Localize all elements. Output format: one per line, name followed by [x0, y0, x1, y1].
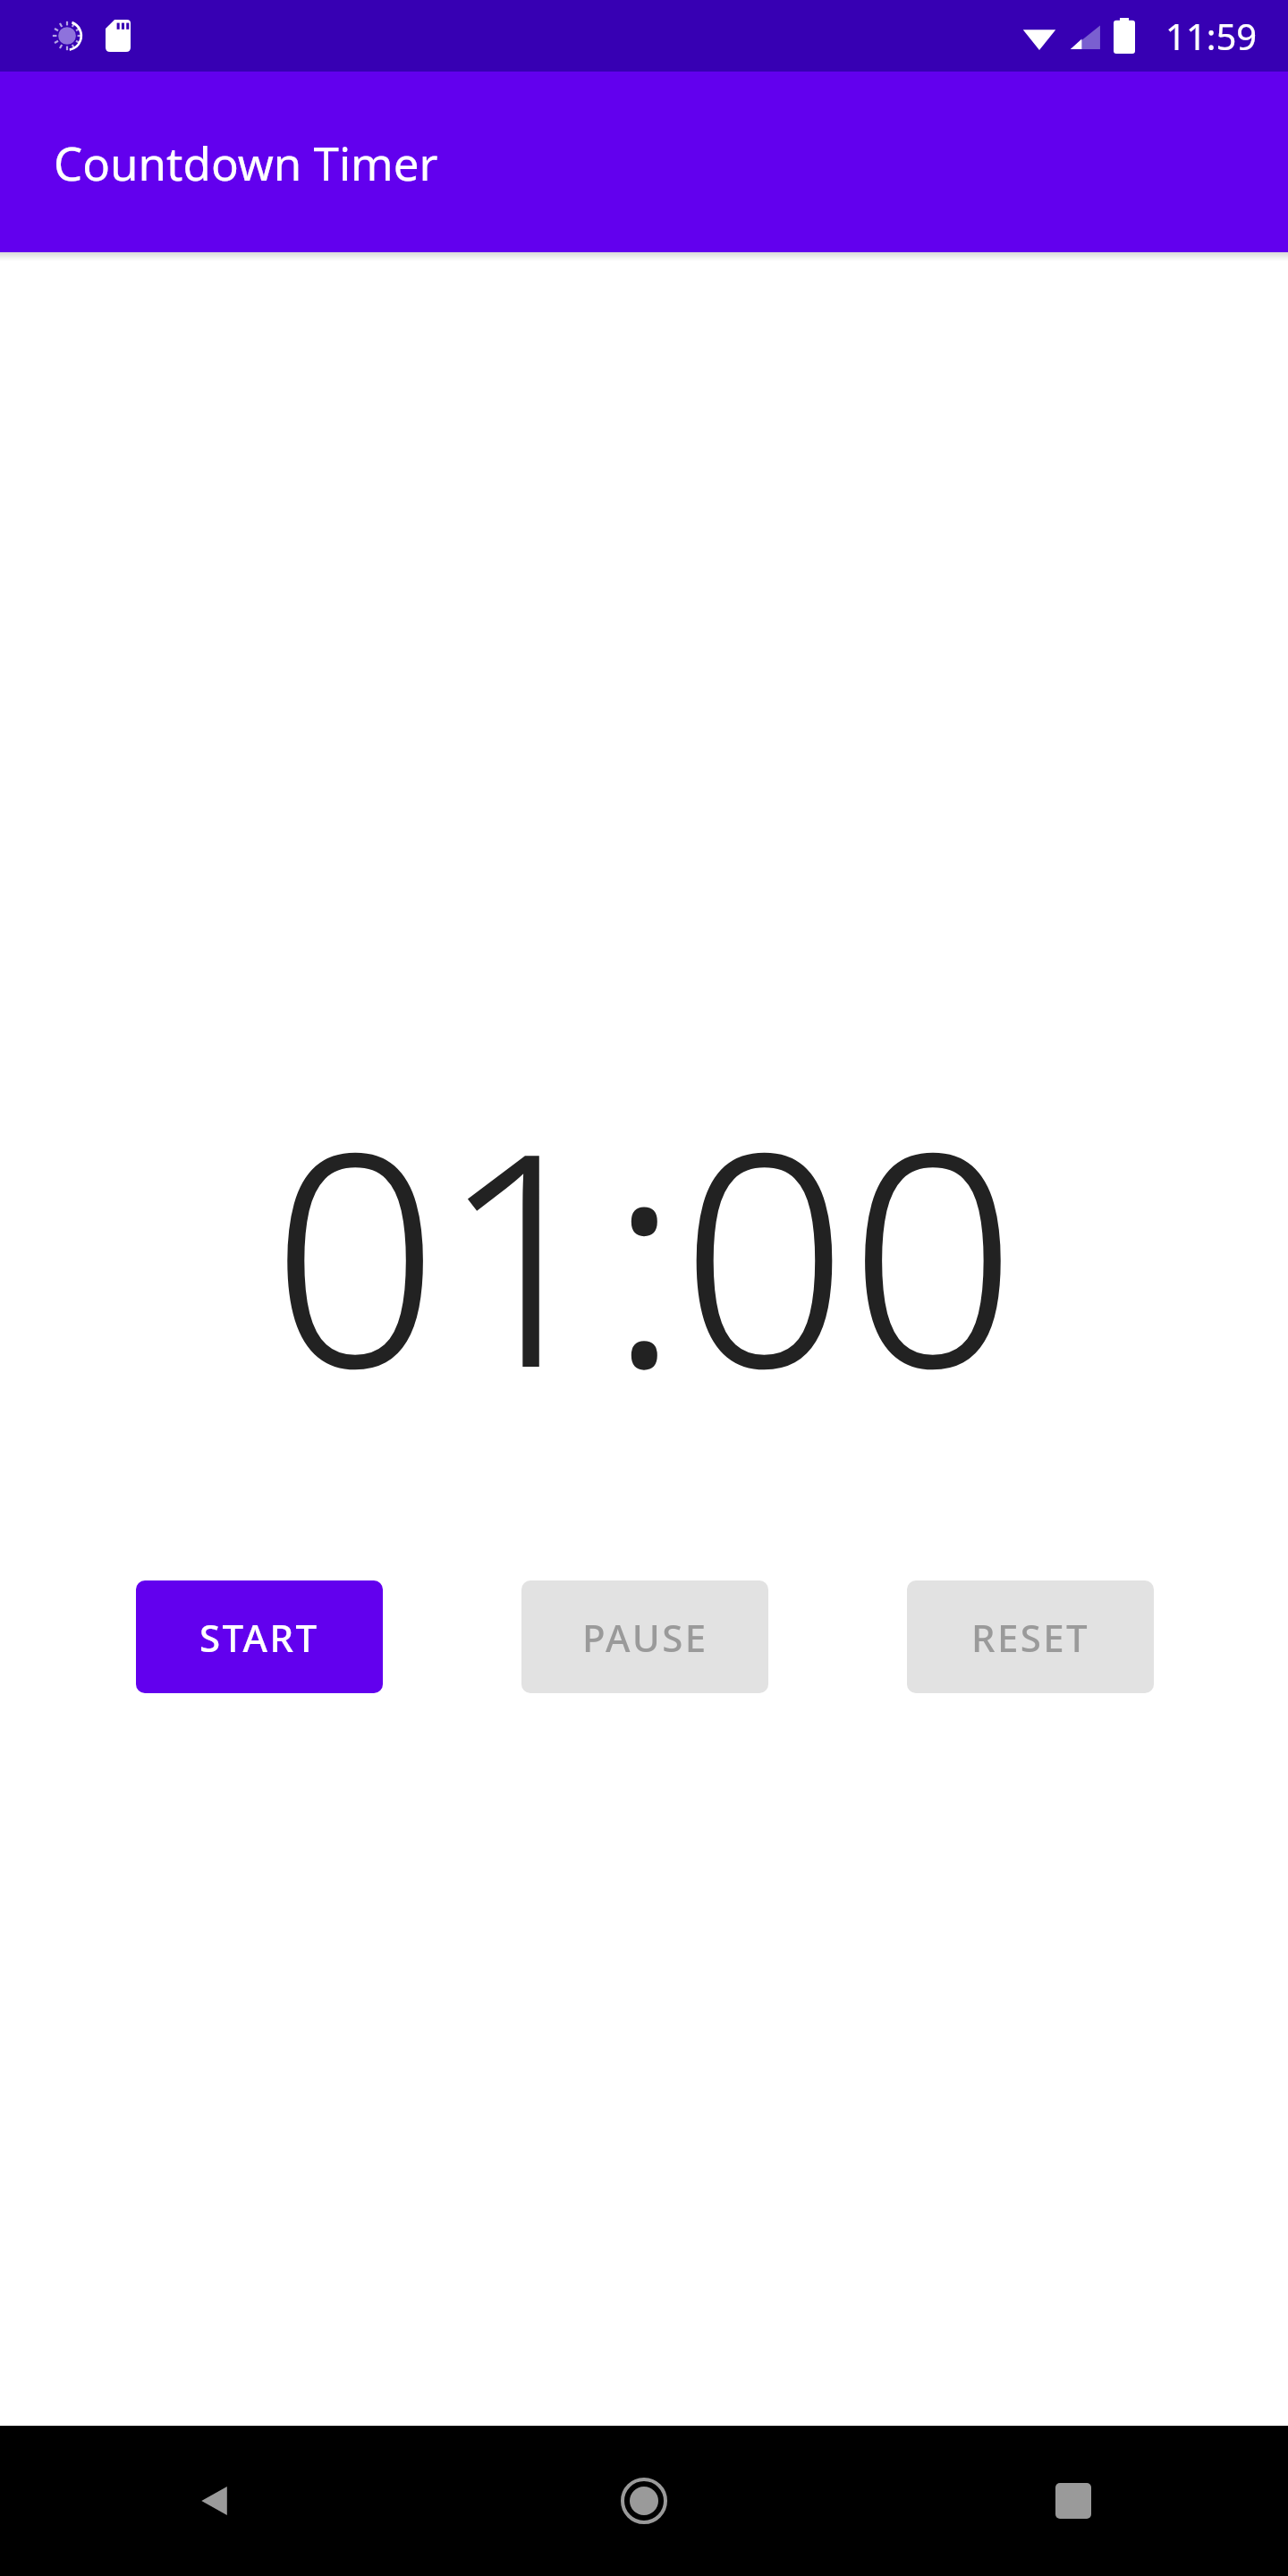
button[interactable]: Home	[429, 2426, 859, 2576]
button[interactable]: RESET	[907, 1580, 1154, 1693]
button[interactable]: PAUSE	[521, 1580, 768, 1693]
staticText: 11:59	[1165, 12, 1258, 60]
staticText: START	[199, 1612, 319, 1663]
staticText: Countdown Timer	[54, 131, 438, 193]
staticText: PAUSE	[582, 1612, 708, 1663]
staticText: RESET	[971, 1612, 1090, 1663]
button[interactable]: Recent apps	[859, 2426, 1288, 2576]
button[interactable]: Back	[0, 2426, 429, 2576]
button[interactable]: START	[136, 1580, 383, 1693]
staticText: 01:00	[271, 1051, 1018, 1453]
